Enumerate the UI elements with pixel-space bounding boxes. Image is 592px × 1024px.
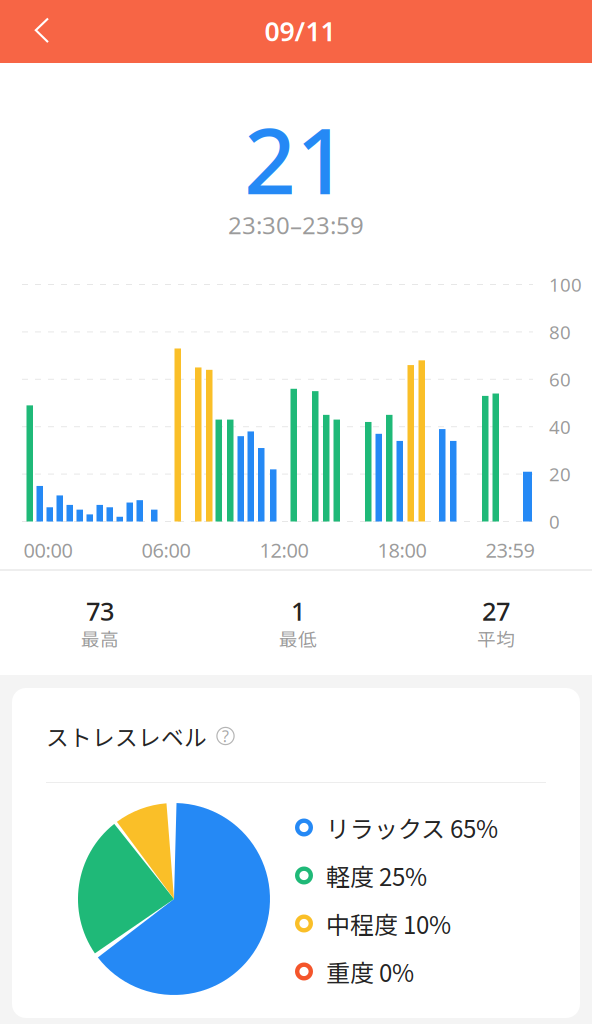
staticText: 18:00 xyxy=(377,537,426,563)
staticText: 軽度 25% xyxy=(326,858,427,893)
staticText: 23:30–23:59 xyxy=(228,209,364,241)
button[interactable]: 1 xyxy=(208,592,388,654)
staticText: 27 xyxy=(482,594,510,628)
staticText: 80 xyxy=(549,319,571,344)
staticText: 09/11 xyxy=(264,13,335,49)
button[interactable]: About stress level xyxy=(216,726,235,745)
button[interactable]: 27 xyxy=(406,592,586,654)
staticText: 20 xyxy=(549,462,571,486)
staticText: 100 xyxy=(549,272,582,297)
staticText: 23:59 xyxy=(485,537,534,563)
staticText: 中程度 10% xyxy=(326,906,451,941)
staticText: ? xyxy=(222,725,229,747)
staticText: ストレスレベル xyxy=(46,720,207,752)
staticText: 12:00 xyxy=(259,537,308,563)
staticText: 73 xyxy=(86,594,114,628)
staticText: 1 xyxy=(291,594,305,628)
staticText: 40 xyxy=(549,414,571,439)
staticText: 60 xyxy=(549,367,571,392)
staticText: 06:00 xyxy=(141,537,190,563)
button[interactable]: Back xyxy=(0,9,60,53)
button[interactable]: 73 xyxy=(10,592,190,654)
staticText: 0 xyxy=(549,509,560,534)
staticText: 21 xyxy=(244,99,348,219)
staticText: 重度 0% xyxy=(326,954,414,989)
staticText: 00:00 xyxy=(23,537,72,563)
staticText: 平均 xyxy=(477,625,515,652)
staticText: 最低 xyxy=(279,625,317,652)
staticText: 最高 xyxy=(81,625,119,652)
staticText: リラックス 65% xyxy=(326,810,498,845)
